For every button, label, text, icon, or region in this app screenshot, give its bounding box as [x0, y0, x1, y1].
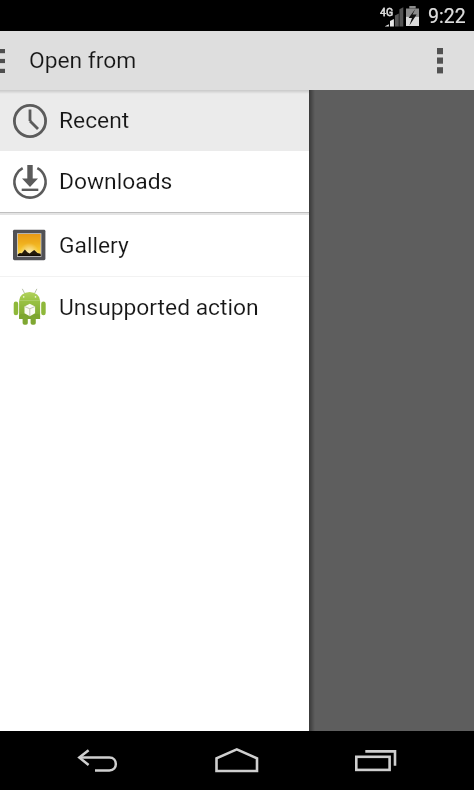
- button[interactable]: Recent apps: [316, 731, 436, 790]
- staticText: 9:22: [428, 5, 466, 28]
- button[interactable]: More options: [418, 31, 474, 90]
- button[interactable]: Home: [177, 731, 297, 790]
- staticText: Open from: [29, 47, 137, 74]
- staticText: Recent: [59, 107, 130, 134]
- staticText: Unsupported action: [59, 294, 259, 321]
- button[interactable]: Unsupported action: [0, 277, 309, 338]
- button[interactable]: Recent: [0, 90, 309, 151]
- button[interactable]: Back: [39, 731, 159, 790]
- button[interactable]: Gallery: [0, 215, 309, 276]
- button[interactable]: Downloads: [0, 151, 309, 212]
- staticText: Gallery: [59, 232, 129, 259]
- staticText: Downloads: [59, 168, 173, 195]
- button[interactable]: Navigation drawer: [0, 31, 6, 90]
- staticText: 4G: [380, 6, 394, 18]
